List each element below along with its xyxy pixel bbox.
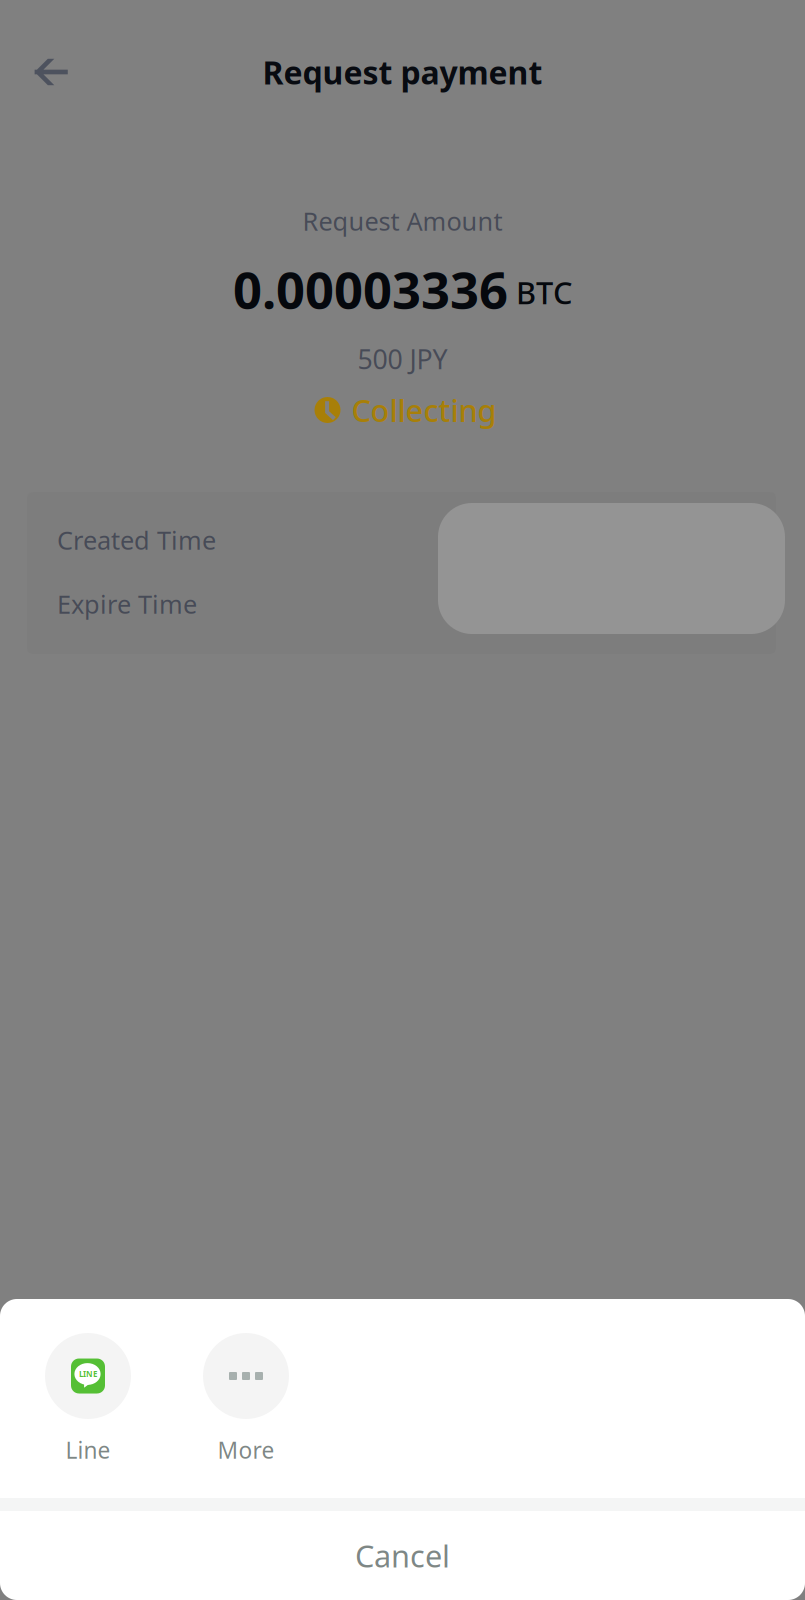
button[interactable]: LINE bbox=[9, 1299, 167, 1498]
staticText: Collecting bbox=[351, 390, 496, 430]
button[interactable]: Cancel bbox=[0, 1511, 805, 1600]
staticText: Line bbox=[65, 1435, 110, 1465]
staticText: Cancel bbox=[355, 1535, 450, 1576]
staticText: Request Amount bbox=[302, 204, 502, 238]
staticText: Request payment bbox=[262, 51, 542, 93]
staticText: Expire Time bbox=[57, 587, 197, 621]
button[interactable]: Back bbox=[21, 42, 81, 102]
staticText: LINE bbox=[79, 1369, 97, 1379]
staticText: More bbox=[217, 1435, 274, 1465]
button[interactable]: More bbox=[167, 1299, 325, 1498]
staticText: 500 JPY bbox=[357, 341, 447, 377]
staticText: Created Time bbox=[57, 523, 216, 557]
staticText: 0.00003336 bbox=[233, 255, 508, 323]
staticText: BTC bbox=[516, 272, 572, 313]
